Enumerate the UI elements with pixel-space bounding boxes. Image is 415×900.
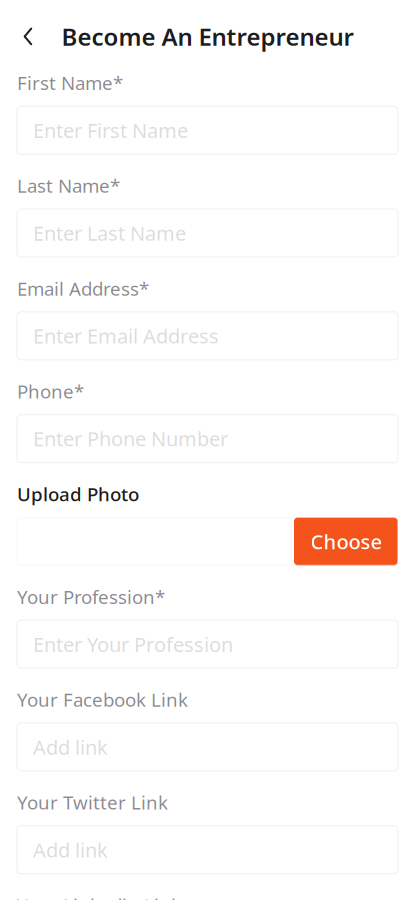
button[interactable]: Enter Phone Number (17, 415, 398, 463)
staticText: Upload Photo (17, 482, 139, 506)
staticText: Enter Your Profession (33, 631, 233, 657)
staticText: Your Facebook Link (17, 687, 188, 712)
staticText: Your Profession* (17, 584, 165, 609)
staticText: Enter First Name (33, 117, 188, 144)
button[interactable]: Choose (294, 517, 398, 565)
button[interactable]: Back (6, 14, 50, 58)
button[interactable]: Enter Email Address (17, 312, 398, 360)
staticText: Become An Entrepreneur (61, 20, 353, 52)
staticText: Add link (33, 836, 108, 863)
button[interactable]: Enter First Name (17, 106, 398, 154)
staticText: Your Twitter Link (17, 790, 168, 815)
staticText: Last Name* (17, 173, 120, 198)
staticText: Add link (33, 734, 108, 760)
button[interactable]: Enter Your Profession (17, 620, 398, 668)
staticText: Enter Email Address (33, 322, 219, 349)
staticText: Email Address* (17, 276, 149, 301)
staticText: Phone* (17, 379, 84, 404)
button[interactable]: Enter Last Name (17, 209, 398, 257)
staticText: Enter Last Name (33, 220, 186, 246)
button[interactable]: Add link (17, 826, 398, 874)
staticText: First Name* (17, 70, 123, 95)
staticText: Choose (310, 528, 381, 555)
staticText: Your Linkedin Link (17, 893, 181, 900)
button[interactable]: Add link (17, 723, 398, 771)
staticText: Enter Phone Number (33, 425, 228, 452)
